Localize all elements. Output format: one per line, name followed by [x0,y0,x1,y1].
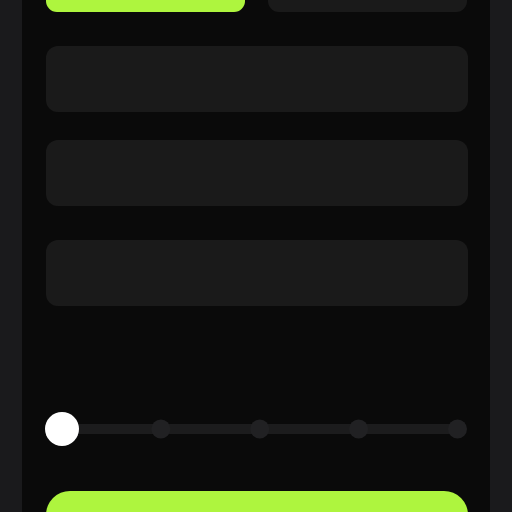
button[interactable]: Amount slider [46,405,468,453]
button[interactable]: Monthly plan [46,0,245,12]
button[interactable]: Continue [46,491,468,512]
